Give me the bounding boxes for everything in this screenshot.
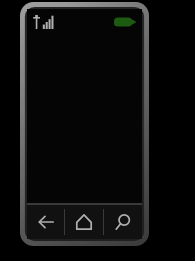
button[interactable]: Back <box>27 205 64 239</box>
button[interactable]: Signal strength <box>27 9 142 203</box>
button[interactable]: Battery <box>112 13 138 31</box>
button[interactable]: Home <box>65 205 103 239</box>
button[interactable]: Signal strength <box>31 13 57 31</box>
button[interactable]: Search <box>104 205 142 239</box>
